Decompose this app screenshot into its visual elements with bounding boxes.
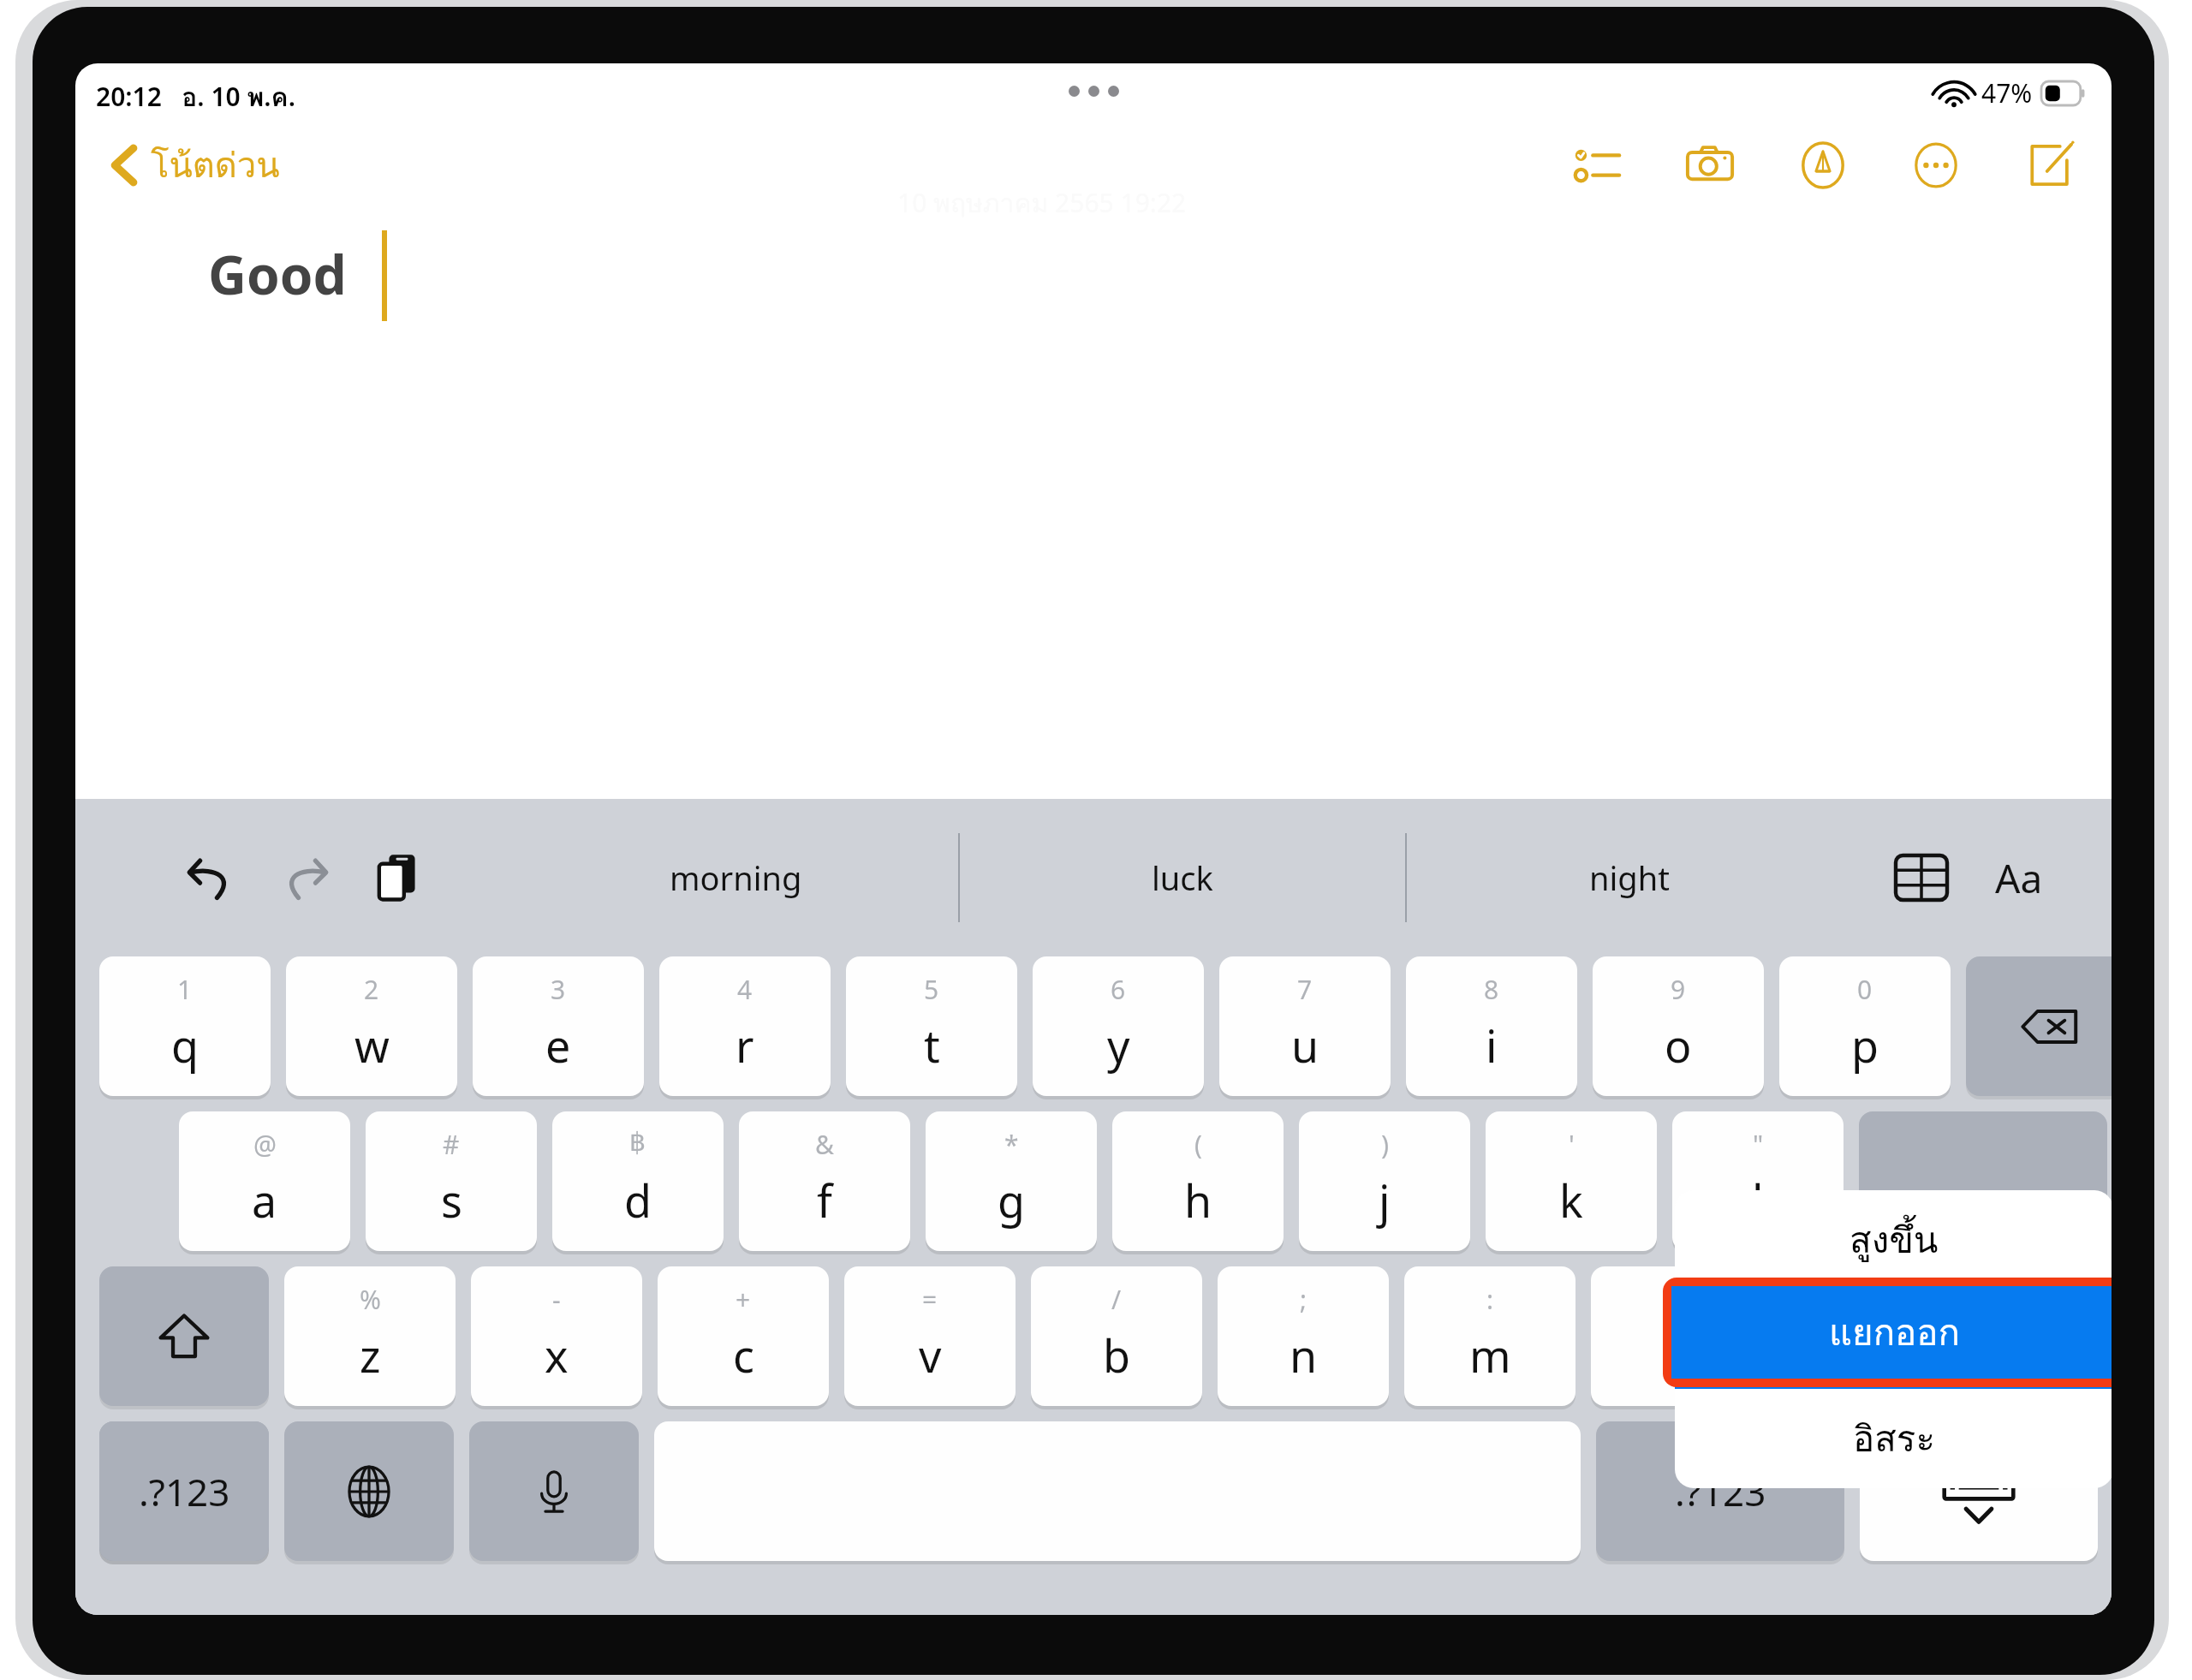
button[interactable]: 2: [286, 956, 457, 1096]
staticText: 8: [1484, 972, 1499, 1007]
button[interactable]: 6: [1033, 956, 1204, 1096]
button[interactable]: ฿: [552, 1111, 724, 1251]
button[interactable]: 3: [473, 956, 644, 1096]
staticText: n: [1290, 1325, 1318, 1385]
button[interactable]: Numbers: [99, 1421, 269, 1561]
staticText: ): [1381, 1127, 1389, 1162]
staticText: s: [441, 1170, 462, 1230]
staticText: 20:12 อ. 10 พ.ค.: [96, 77, 295, 118]
staticText: h: [1184, 1170, 1212, 1230]
staticText: d: [624, 1170, 652, 1230]
button[interactable]: +: [658, 1266, 829, 1406]
button[interactable]: Undo: [170, 837, 252, 919]
button[interactable]: .?123: [1596, 1421, 1844, 1561]
staticText: /: [1111, 1282, 1122, 1317]
button[interactable]: -: [471, 1266, 642, 1406]
staticText: 6: [1111, 972, 1126, 1007]
button[interactable]: ): [1299, 1111, 1470, 1251]
staticText: ฿: [629, 1127, 646, 1157]
button[interactable]: Space: [654, 1421, 1581, 1561]
button[interactable]: Shift right: [1964, 1266, 2112, 1406]
button[interactable]: Table: [1880, 837, 1963, 919]
button[interactable]: โน้ตด่วน: [96, 118, 294, 212]
button[interactable]: Return: [1859, 1111, 2107, 1251]
staticText: v: [919, 1325, 942, 1385]
button[interactable]: Backspace: [1966, 956, 2112, 1096]
staticText: f: [817, 1170, 832, 1230]
button[interactable]: Paste: [358, 837, 440, 919]
staticText: 0: [1857, 972, 1873, 1007]
button[interactable]: Camera: [1673, 128, 1747, 202]
button[interactable]: อิสระ: [1675, 1389, 2112, 1488]
button[interactable]: @: [179, 1111, 350, 1251]
staticText: g: [998, 1170, 1025, 1230]
button[interactable]: Format: [1978, 837, 2060, 919]
staticText: .: [1857, 1325, 1869, 1385]
button[interactable]: Dictate: [469, 1421, 639, 1561]
staticText: ,: [1671, 1325, 1683, 1385]
button[interactable]: 9: [1593, 956, 1764, 1096]
staticText: w: [354, 1015, 390, 1075]
button[interactable]: ;: [1218, 1266, 1389, 1406]
button[interactable]: =: [844, 1266, 1016, 1406]
staticText: %: [360, 1282, 381, 1317]
button[interactable]: More: [1899, 128, 1973, 202]
staticText: แยกออก: [1829, 1304, 1960, 1361]
button[interactable]: Hide keyboard: [1860, 1421, 2098, 1561]
button[interactable]: :: [1404, 1266, 1575, 1406]
staticText: !: [1673, 1282, 1681, 1317]
button[interactable]: 4: [659, 956, 831, 1096]
button[interactable]: #: [366, 1111, 537, 1251]
button[interactable]: Checklist: [1560, 128, 1634, 202]
button[interactable]: ?: [1778, 1266, 1949, 1406]
button[interactable]: luck: [959, 799, 1406, 956]
button[interactable]: ': [1486, 1111, 1657, 1251]
button[interactable]: *: [926, 1111, 1097, 1251]
staticText: +: [736, 1282, 751, 1317]
button[interactable]: 1: [99, 956, 271, 1096]
button[interactable]: .?123: [99, 1421, 269, 1561]
staticText: (: [1194, 1127, 1202, 1162]
button[interactable]: 8: [1406, 956, 1577, 1096]
staticText: 7: [1297, 972, 1313, 1007]
staticText: 5: [924, 972, 939, 1007]
button[interactable]: New note: [2012, 128, 2086, 202]
button[interactable]: 5: [846, 956, 1017, 1096]
staticText: *: [1004, 1127, 1019, 1162]
staticText: ;: [1300, 1282, 1307, 1317]
staticText: .?123: [139, 1466, 230, 1517]
staticText: u: [1291, 1015, 1319, 1075]
staticText: p: [1851, 1015, 1879, 1075]
staticText: 47%: [1981, 75, 2033, 110]
staticText: -: [552, 1282, 561, 1317]
button[interactable]: 0: [1779, 956, 1951, 1096]
button[interactable]: morning: [512, 799, 959, 956]
staticText: .?123: [1675, 1466, 1766, 1517]
button[interactable]: Markup: [1786, 128, 1860, 202]
staticText: o: [1665, 1015, 1692, 1075]
button[interactable]: &: [739, 1111, 910, 1251]
button[interactable]: /: [1031, 1266, 1202, 1406]
button[interactable]: Change language: [284, 1421, 454, 1561]
staticText: 9: [1671, 972, 1686, 1007]
staticText: i: [1486, 1015, 1498, 1075]
staticText: :: [1486, 1282, 1494, 1317]
button[interactable]: night: [1406, 799, 1853, 956]
button[interactable]: (: [1112, 1111, 1284, 1251]
button[interactable]: สูงขึ้น: [1675, 1190, 2112, 1290]
staticText: สูงขึ้น: [1849, 1212, 1939, 1269]
staticText: e: [545, 1015, 571, 1075]
button[interactable]: !: [1591, 1266, 1762, 1406]
staticText: Good: [208, 238, 347, 310]
staticText: 3: [551, 972, 566, 1007]
staticText: b: [1103, 1325, 1130, 1385]
staticText: t: [924, 1015, 940, 1075]
button[interactable]: แยกออก: [1675, 1290, 2112, 1389]
button[interactable]: 7: [1219, 956, 1391, 1096]
staticText: r: [736, 1015, 754, 1075]
button[interactable]: Redo: [264, 837, 346, 919]
button[interactable]: Shift: [99, 1266, 269, 1406]
button[interactable]: %: [284, 1266, 456, 1406]
button[interactable]: ": [1672, 1111, 1844, 1251]
